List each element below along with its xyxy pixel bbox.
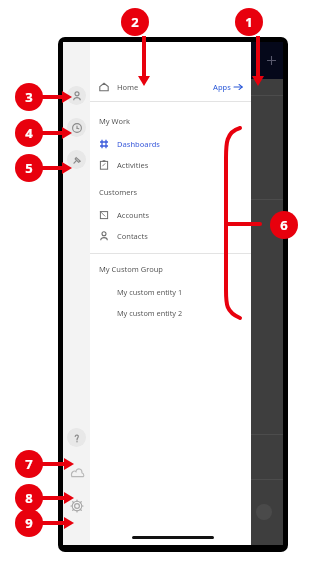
button[interactable]: Apps — [213, 82, 243, 92]
staticText: Home — [117, 82, 139, 92]
staticText: Customers — [99, 187, 138, 197]
button[interactable]: Accounts — [90, 204, 251, 225]
button[interactable]: Offline — [68, 463, 86, 481]
staticText: 3 — [25, 88, 33, 106]
button[interactable]: Settings — [68, 497, 86, 515]
staticText: 9 — [25, 514, 33, 532]
staticText: 7 — [25, 455, 33, 473]
staticText: My custom entity 2 — [117, 308, 183, 318]
staticText: Contacts — [117, 231, 148, 241]
button[interactable]: My custom entity 1 — [90, 281, 251, 302]
staticText: Activities — [117, 160, 149, 170]
button[interactable]: Recent — [67, 118, 86, 137]
staticText: Accounts — [117, 210, 150, 220]
staticText: 6 — [280, 216, 288, 234]
button[interactable]: Profile — [67, 86, 86, 105]
button[interactable]: Pinned — [67, 150, 86, 169]
staticText: 4 — [25, 124, 33, 142]
staticText: Apps — [213, 82, 231, 92]
button[interactable]: Dashboards — [90, 133, 251, 154]
staticText: My Work — [99, 116, 131, 126]
staticText: 5 — [25, 159, 33, 177]
button[interactable]: Contacts — [90, 225, 251, 246]
button[interactable]: My custom entity 2 — [90, 302, 251, 323]
button[interactable]: Help — [67, 428, 86, 447]
staticText: 2 — [131, 13, 139, 31]
staticText: My custom entity 1 — [117, 287, 183, 297]
staticText: 1 — [245, 13, 253, 31]
staticText: Dashboards — [117, 139, 160, 149]
button[interactable]: Home — [90, 76, 251, 98]
staticText: My Custom Group — [99, 264, 163, 274]
staticText: 8 — [25, 489, 33, 507]
button[interactable]: Activities — [90, 154, 251, 175]
